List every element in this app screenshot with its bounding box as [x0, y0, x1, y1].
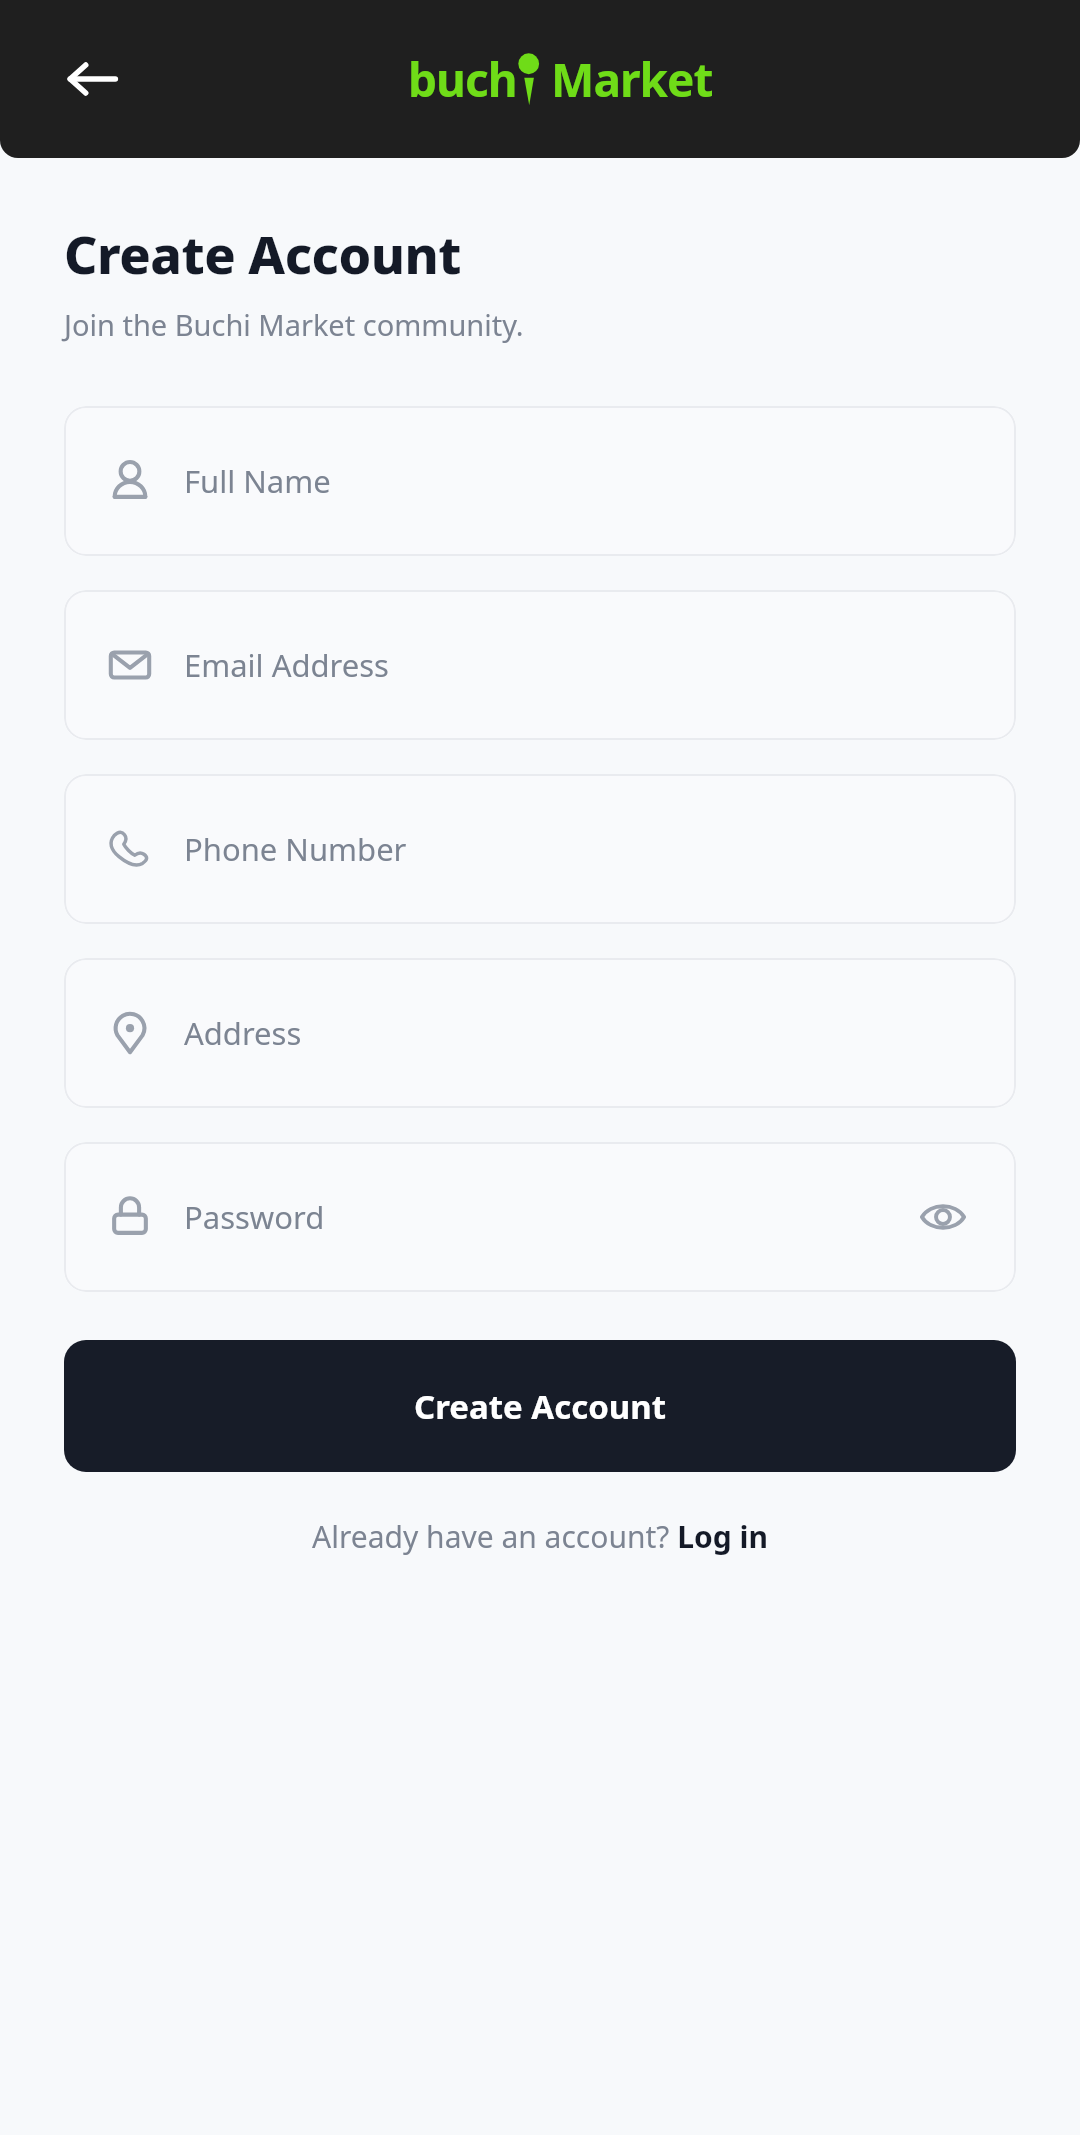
staticText: Already have an account? Log in — [312, 1516, 768, 1557]
button[interactable]: Show password — [912, 1186, 974, 1248]
button[interactable]: Create Account — [64, 1340, 1016, 1472]
staticText: buch — [408, 48, 517, 111]
staticText: Create Account — [414, 1384, 667, 1429]
staticText: Join the Buchi Market community. — [64, 305, 524, 344]
button[interactable]: Email Address — [64, 590, 1016, 740]
staticText: Full Name — [184, 460, 331, 502]
button[interactable]: Full Name — [64, 406, 1016, 556]
staticText: Phone Number — [184, 828, 407, 870]
button[interactable]: Password — [64, 1142, 1016, 1292]
button[interactable]: Phone Number — [64, 774, 1016, 924]
button[interactable]: Already have an account? Log in — [64, 1516, 1016, 1557]
staticText: Market — [551, 48, 713, 111]
staticText: Create Account — [64, 218, 461, 289]
button[interactable]: Address — [64, 958, 1016, 1108]
staticText: Password — [184, 1196, 325, 1238]
staticText: Email Address — [184, 644, 389, 686]
staticText: Address — [184, 1012, 302, 1054]
button[interactable]: Back — [46, 33, 138, 125]
